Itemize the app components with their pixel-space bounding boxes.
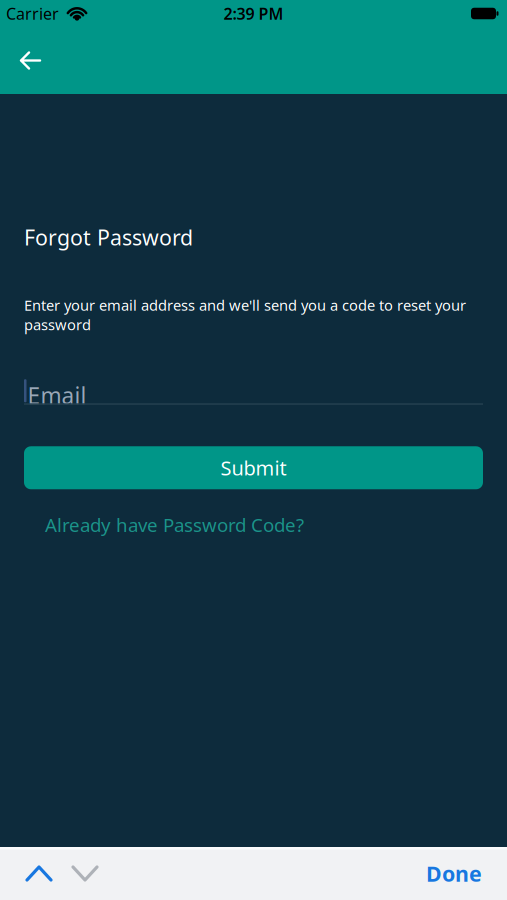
button[interactable]: Submit xyxy=(24,446,483,489)
button[interactable]: Previous field xyxy=(0,867,51,880)
staticText: Carrier xyxy=(6,3,59,24)
staticText: Submit xyxy=(220,454,286,481)
button[interactable]: Next field xyxy=(51,867,97,880)
staticText: Done xyxy=(426,859,482,888)
button[interactable]: Done xyxy=(426,859,507,888)
button[interactable]: Email xyxy=(24,334,483,405)
staticText: Email xyxy=(27,380,86,410)
staticText: 2:39 PM xyxy=(223,3,283,24)
button[interactable]: Back xyxy=(0,27,40,70)
button[interactable]: Already have Password Code? xyxy=(24,489,304,537)
staticText: Forgot Password xyxy=(24,223,193,251)
staticText: Enter your email address and we'll send … xyxy=(24,295,466,334)
staticText: Already have Password Code? xyxy=(45,512,304,537)
